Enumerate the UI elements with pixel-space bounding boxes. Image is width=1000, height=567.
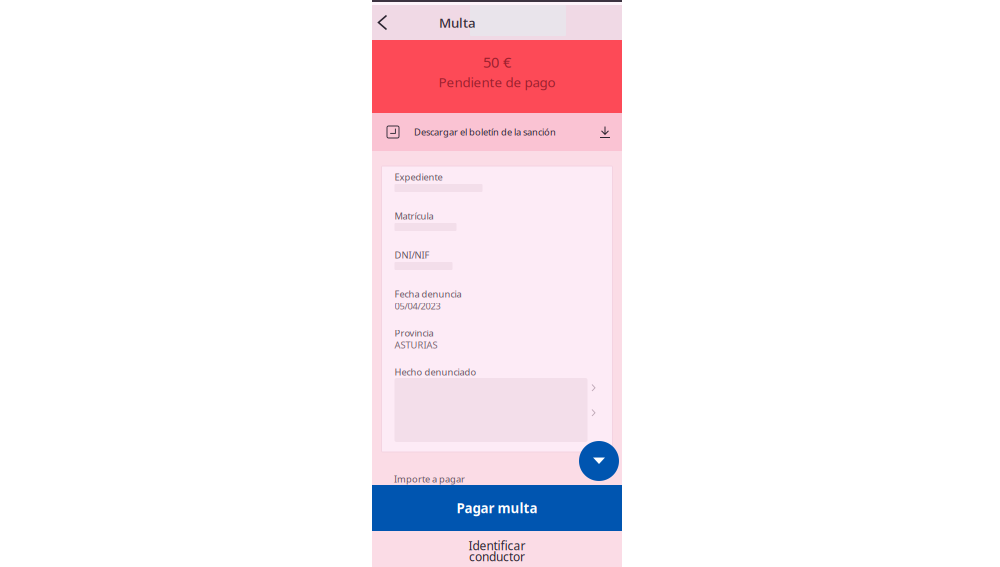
staticText: Multa	[439, 14, 476, 31]
button[interactable]: Descargar el boletín de la sanción	[372, 113, 622, 151]
staticText: Hecho denunciado	[394, 366, 476, 378]
staticText: Descargar el boletín de la sanción	[414, 126, 556, 138]
staticText: 05/04/2023	[394, 300, 440, 312]
staticText: Provincia	[394, 327, 433, 339]
staticText: Matrícula	[394, 210, 433, 222]
staticText: ASTURIAS	[394, 339, 437, 351]
staticText: 50 €	[483, 52, 511, 72]
button[interactable]: Back	[372, 5, 398, 40]
staticText: Fecha denuncia	[394, 288, 461, 300]
staticText: Expediente	[394, 171, 442, 183]
staticText: Pendiente de pago	[438, 73, 555, 91]
button[interactable]: Expand	[579, 441, 619, 481]
button[interactable]: Identificar	[372, 531, 622, 567]
staticText: Pagar multa	[456, 499, 537, 517]
button[interactable]: Pagar multa	[372, 485, 622, 531]
staticText: DNI/NIF	[394, 249, 429, 261]
staticText: Importe a pagar	[394, 473, 465, 485]
staticText: Identificar	[468, 537, 525, 553]
staticText: conductor	[469, 548, 525, 564]
